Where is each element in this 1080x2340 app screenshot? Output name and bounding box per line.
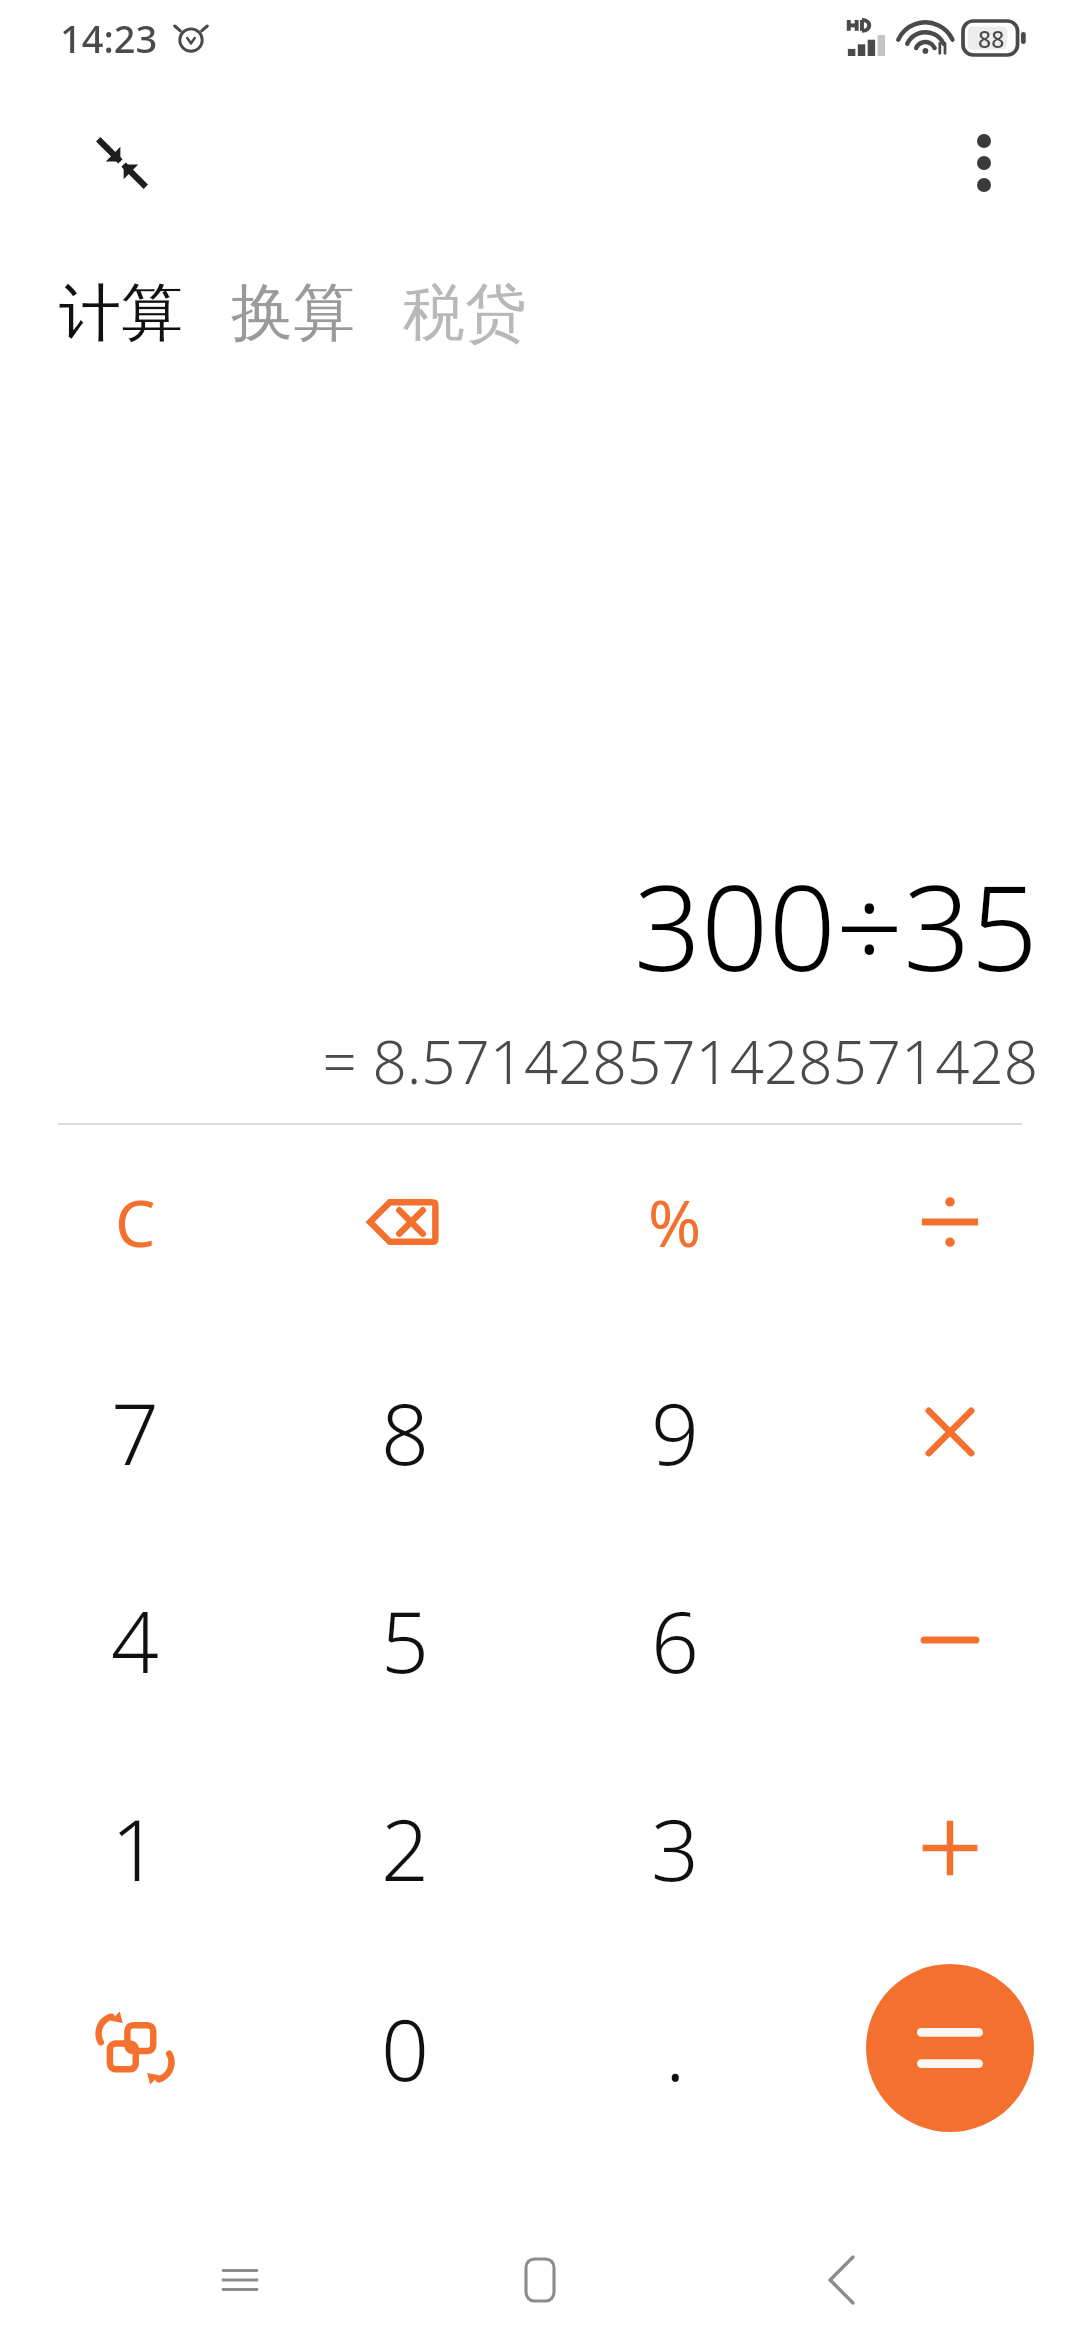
button[interactable]: Backspace (305, 1122, 505, 1322)
button[interactable]: % (575, 1122, 775, 1322)
staticText: 计算 (59, 274, 183, 352)
button[interactable]: Equals (866, 1964, 1034, 2132)
button[interactable]: Recent apps (180, 2220, 300, 2340)
button[interactable]: 税贷 (399, 268, 531, 358)
button[interactable]: . (575, 1948, 775, 2148)
button[interactable]: Collapse (78, 119, 166, 207)
staticText: 300÷35 (633, 845, 1038, 1006)
button[interactable]: 5 (305, 1540, 505, 1740)
button[interactable]: 3 (575, 1748, 775, 1948)
staticText: 换算 (231, 274, 355, 352)
staticText: 1 (111, 1791, 159, 1905)
staticText: 6 (651, 1583, 699, 1697)
staticText: 2 (381, 1791, 429, 1905)
staticText: 税贷 (403, 274, 527, 352)
button[interactable]: 计算 (55, 268, 187, 358)
button[interactable]: 1 (35, 1748, 235, 1948)
staticText: 14:23 (60, 12, 158, 64)
staticText: 9 (651, 1375, 699, 1489)
button[interactable]: 8 (305, 1332, 505, 1532)
staticText: = 8.571428571428571428 (322, 1020, 1038, 1102)
button[interactable]: 6 (575, 1540, 775, 1740)
staticText: C (115, 1179, 156, 1266)
button[interactable]: 0 (305, 1948, 505, 2148)
button[interactable]: Divide (850, 1122, 1050, 1322)
staticText: 7 (111, 1375, 159, 1489)
staticText: 8 (381, 1375, 429, 1489)
button[interactable]: Multiply (850, 1332, 1050, 1532)
staticText: 88 (978, 23, 1005, 54)
button[interactable]: Plus (850, 1748, 1050, 1948)
button[interactable]: 9 (575, 1332, 775, 1532)
staticText: 0 (381, 1991, 429, 2105)
button[interactable]: 2 (305, 1748, 505, 1948)
button[interactable]: 7 (35, 1332, 235, 1532)
button[interactable]: Back (780, 2220, 900, 2340)
staticText: 4 (111, 1583, 159, 1697)
staticText: 5 (381, 1583, 429, 1697)
staticText: % (648, 1179, 702, 1266)
button[interactable]: 换算 (227, 268, 359, 358)
button[interactable]: Minus (850, 1540, 1050, 1740)
button[interactable]: Home (480, 2220, 600, 2340)
staticText: . (665, 1991, 686, 2105)
staticText: 3 (651, 1791, 699, 1905)
button[interactable]: C (35, 1122, 235, 1322)
button[interactable]: More options (940, 119, 1028, 207)
button[interactable]: Convert units (35, 1948, 235, 2148)
button[interactable]: 4 (35, 1540, 235, 1740)
